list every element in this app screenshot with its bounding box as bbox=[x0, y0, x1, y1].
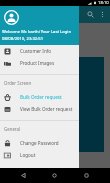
staticText: CHENNAI bbox=[10, 73, 29, 79]
button[interactable]: Recent apps bbox=[80, 169, 93, 182]
button[interactable]: Bulk Order request bbox=[0, 91, 79, 103]
staticText: 18:10 bbox=[98, 0, 109, 6]
staticText: 08/08/2016, 23:32:51 bbox=[2, 36, 44, 42]
staticText: Welcome Mr. karthi Your Last Login bbox=[2, 29, 72, 35]
button[interactable]: Search bbox=[84, 8, 97, 21]
staticText: Order Screen bbox=[4, 80, 32, 86]
button[interactable]: More options bbox=[97, 9, 108, 20]
staticText: Bulk Order request bbox=[20, 94, 62, 100]
button[interactable]: Product Images bbox=[0, 57, 79, 69]
staticText: Product Images bbox=[20, 60, 55, 66]
staticText: General bbox=[4, 126, 21, 132]
button[interactable]: Back bbox=[17, 169, 30, 182]
staticText: SOUTH INDIA bbox=[10, 63, 43, 70]
staticText: Logout bbox=[20, 152, 36, 158]
staticText: Change Password bbox=[20, 140, 59, 146]
staticText: View Bulk Order request bbox=[20, 106, 73, 112]
button[interactable]: Change Password bbox=[0, 137, 79, 149]
button[interactable]: Customer Info bbox=[0, 45, 79, 57]
staticText: Sub territory bbox=[10, 129, 35, 135]
button[interactable]: Home bbox=[48, 169, 61, 182]
staticText: Customer Info bbox=[20, 48, 52, 54]
button[interactable]: View Bulk Order request bbox=[0, 103, 79, 115]
button[interactable]: Logout bbox=[0, 149, 79, 161]
